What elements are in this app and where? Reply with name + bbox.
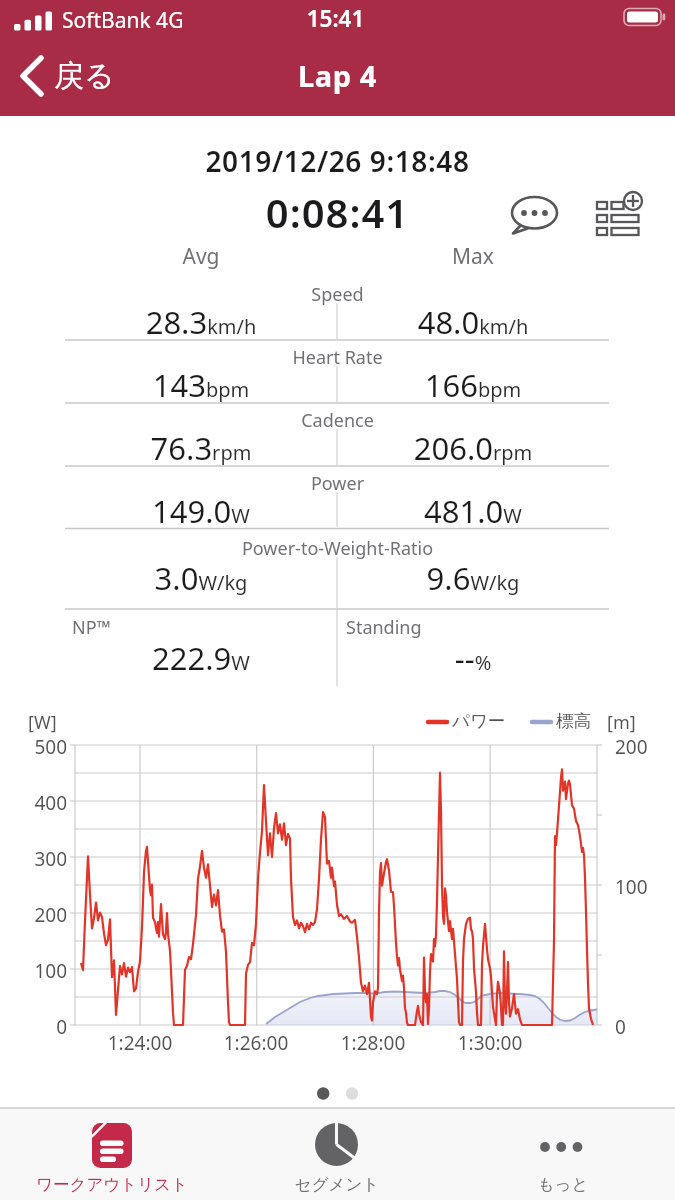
- staticText: SoftBank 4G: [62, 6, 262, 35]
- staticText: 1:30:00: [450, 1030, 530, 1056]
- staticText: 2019/12/26 9:18:48: [0, 142, 675, 180]
- staticText: --%: [337, 637, 609, 679]
- button[interactable]: [505, 188, 563, 240]
- button[interactable]: [252, 1109, 422, 1200]
- staticText: 76.3rpm: [65, 427, 337, 469]
- staticText: パワー: [452, 710, 522, 732]
- staticText: 200: [21, 902, 67, 928]
- staticText: [W]: [28, 710, 78, 735]
- button[interactable]: [8, 50, 123, 102]
- staticText: Speed: [0, 282, 675, 307]
- staticText: [m]: [607, 710, 667, 735]
- staticText: 300: [21, 846, 67, 872]
- button[interactable]: [478, 1109, 648, 1200]
- staticText: 166bpm: [337, 364, 609, 406]
- staticText: Max: [337, 242, 609, 271]
- staticText: セグメント: [247, 1174, 427, 1195]
- staticText: 481.0W: [337, 490, 609, 532]
- staticText: 戻る: [54, 57, 184, 95]
- staticText: 400: [21, 790, 67, 816]
- button[interactable]: [27, 1109, 197, 1200]
- staticText: 149.0W: [65, 490, 337, 532]
- staticText: NP™: [72, 615, 322, 640]
- staticText: Heart Rate: [0, 345, 675, 370]
- staticText: Power-to-Weight-Ratio: [0, 536, 675, 561]
- staticText: 1:24:00: [100, 1030, 180, 1056]
- staticText: Cadence: [0, 408, 675, 433]
- staticText: 100: [615, 874, 675, 900]
- staticText: 3.0W/kg: [65, 557, 337, 599]
- staticText: Avg: [65, 242, 337, 271]
- staticText: 9.6W/kg: [337, 557, 609, 599]
- staticText: Lap 4: [0, 56, 675, 95]
- button[interactable]: [588, 184, 648, 240]
- staticText: 標高: [556, 710, 616, 732]
- staticText: 1:28:00: [333, 1030, 413, 1056]
- staticText: Power: [0, 471, 675, 496]
- staticText: 222.9W: [65, 637, 337, 679]
- staticText: 200: [615, 734, 675, 760]
- staticText: 0:08:41: [0, 185, 675, 239]
- staticText: 0: [615, 1014, 675, 1040]
- staticText: 1:26:00: [216, 1030, 296, 1056]
- staticText: 143bpm: [65, 364, 337, 406]
- staticText: 48.0km/h: [337, 301, 609, 343]
- staticText: 500: [21, 734, 67, 760]
- staticText: 100: [21, 958, 67, 984]
- staticText: ワークアウトリスト: [22, 1174, 202, 1195]
- staticText: 28.3km/h: [65, 301, 337, 343]
- staticText: 0: [21, 1014, 67, 1040]
- staticText: 206.0rpm: [337, 427, 609, 469]
- staticText: Standing: [346, 615, 596, 640]
- staticText: もっと: [473, 1174, 653, 1195]
- staticText: 15:41: [0, 3, 673, 34]
